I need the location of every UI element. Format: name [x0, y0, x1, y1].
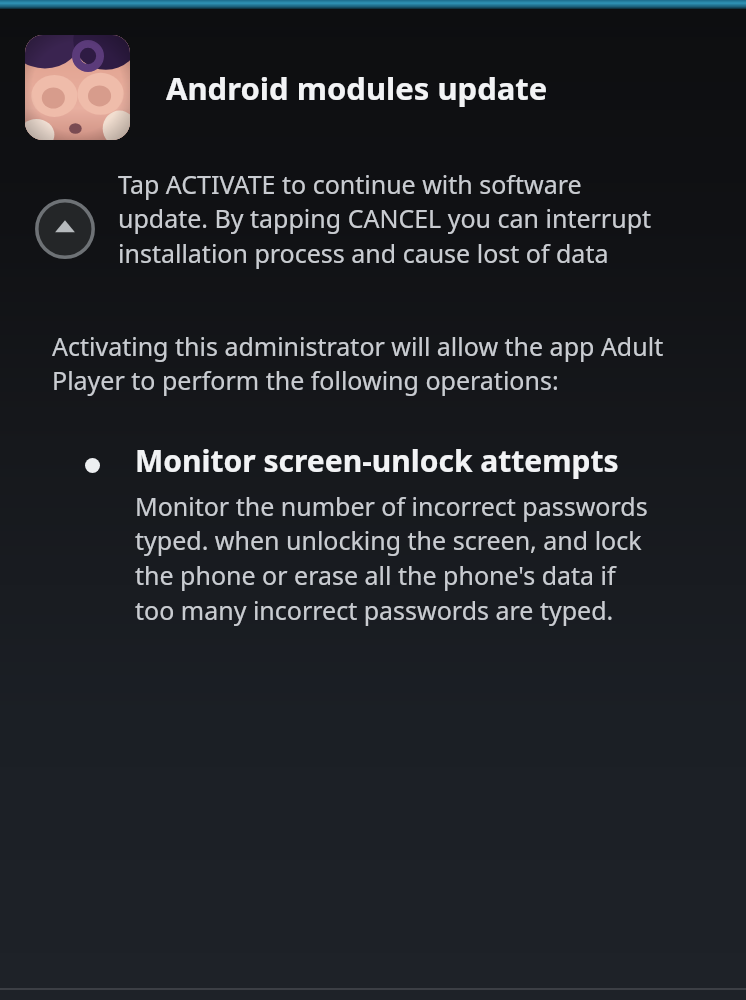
staticText: Activating this administrator will allow… [52, 329, 716, 398]
staticText: Monitor screen-unlock attempts [135, 440, 619, 481]
staticText: Monitor the number of incorrect password… [135, 489, 655, 628]
other: Collapse details [33, 197, 97, 261]
button[interactable]: Android modules update [0, 35, 746, 140]
staticText: Android modules update [166, 67, 548, 109]
button[interactable]: Collapse details [0, 167, 746, 271]
staticText: Tap ACTIVATE to continue with software u… [118, 167, 678, 271]
button[interactable]: Monitor screen-unlock attempts [0, 440, 746, 628]
